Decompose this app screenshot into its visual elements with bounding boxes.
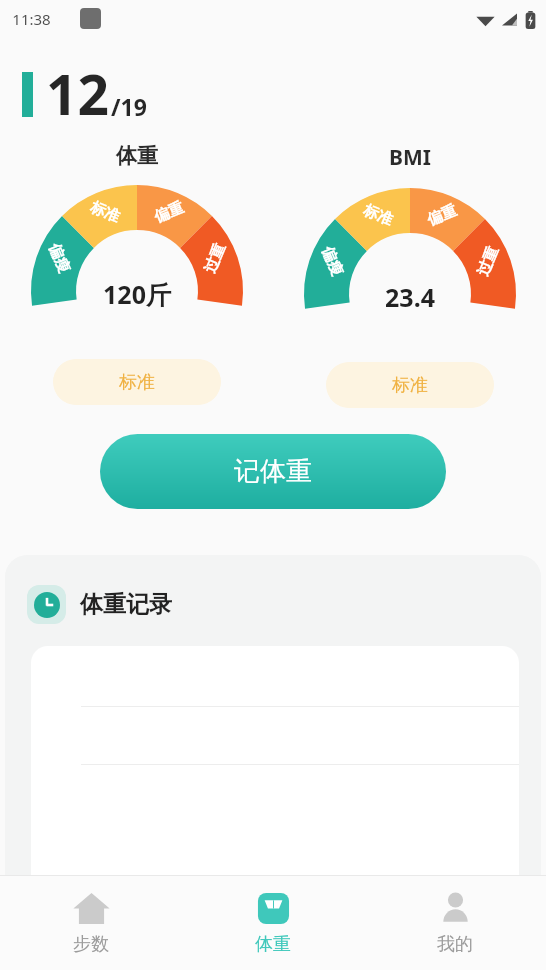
button[interactable]: 体重 — [182, 876, 364, 970]
staticText: 体重 — [116, 143, 158, 169]
staticText: 23.4 — [385, 280, 435, 314]
staticText: 标准 — [119, 371, 155, 394]
button[interactable]: 记体重 — [100, 434, 446, 509]
other: 步数 — [73, 890, 110, 927]
staticText: 体重 — [255, 933, 291, 956]
staticText: 11:38 — [12, 9, 51, 29]
staticText: 我的 — [437, 933, 473, 956]
staticText: 标准 — [360, 201, 395, 230]
button[interactable]: 标准 — [326, 362, 494, 408]
staticText: 体重记录 — [80, 590, 172, 619]
staticText: 偏瘦 — [44, 241, 74, 276]
staticText: 偏重 — [151, 198, 186, 227]
button[interactable]: 标准 — [53, 359, 221, 405]
staticText: 12 — [46, 56, 109, 131]
staticText: 标准 — [392, 374, 428, 397]
button[interactable]: 步数 — [0, 876, 182, 970]
staticText: 120斤 — [103, 277, 171, 311]
staticText: /19 — [111, 91, 147, 122]
staticText: 偏瘦 — [317, 244, 347, 279]
staticText: 标准 — [87, 198, 122, 227]
staticText: 偏重 — [424, 201, 459, 230]
staticText: 记体重 — [234, 455, 312, 488]
staticText: 过重 — [200, 241, 230, 276]
other: 我的 — [437, 890, 474, 927]
staticText: 过重 — [473, 244, 503, 279]
other: 体重 — [255, 890, 292, 927]
staticText: 步数 — [73, 933, 109, 956]
button[interactable]: 体重记录 — [5, 555, 541, 876]
staticText: BMI — [389, 143, 431, 172]
button[interactable]: 我的 — [364, 876, 546, 970]
